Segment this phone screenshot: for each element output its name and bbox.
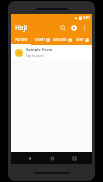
button[interactable]: Home <box>47 153 57 163</box>
staticText: 2 <box>69 38 71 42</box>
button[interactable]: DRAFT <box>32 34 52 45</box>
staticText: DRAFT <box>35 38 45 42</box>
button[interactable]: Search <box>57 22 68 33</box>
staticText: 9:07 <box>83 15 90 20</box>
staticText: Tap to open <box>26 54 44 58</box>
button[interactable]: PATIENT <box>11 34 32 45</box>
button[interactable]: More options <box>79 22 90 33</box>
button[interactable]: Sample Form <box>11 45 92 60</box>
button[interactable]: SENT <box>72 34 92 45</box>
button[interactable]: Recent apps <box>69 153 79 163</box>
button[interactable]: ARCHIVE <box>52 34 72 45</box>
staticText: Haji <box>15 23 28 32</box>
staticText: PATIENT <box>15 38 28 42</box>
staticText: 1 <box>86 38 88 42</box>
button[interactable]: Back <box>24 153 34 163</box>
staticText: 3 <box>47 38 49 42</box>
staticText: ARCHIVE <box>53 38 67 42</box>
staticText: Sample Form <box>26 47 53 53</box>
button[interactable]: Settings <box>68 22 79 33</box>
staticText: SENT <box>76 38 84 42</box>
